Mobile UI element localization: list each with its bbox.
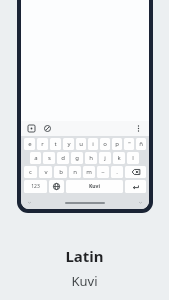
button[interactable]: c [24, 166, 37, 178]
button[interactable]: p [112, 138, 122, 150]
staticText: l [132, 154, 134, 162]
button[interactable]: e [24, 138, 35, 150]
staticText: i [92, 140, 94, 148]
staticText: j [104, 154, 106, 162]
button[interactable]: t [50, 138, 61, 150]
button[interactable]: r [37, 138, 48, 150]
staticText: m [86, 168, 92, 176]
button[interactable]: Enter [125, 180, 146, 193]
staticText: Kuvi [89, 183, 100, 190]
button[interactable]: j [99, 152, 111, 164]
button[interactable]: n [69, 166, 81, 178]
staticText: p [115, 140, 119, 148]
staticText: v [44, 168, 48, 176]
button[interactable]: v [39, 166, 52, 178]
button[interactable]: Change language [49, 180, 64, 193]
staticText: t [54, 140, 57, 148]
button[interactable]: i [88, 138, 98, 150]
button[interactable]: Stickers [26, 123, 37, 134]
button[interactable]: h [85, 152, 97, 164]
staticText: . [116, 168, 118, 176]
button[interactable]: . [111, 166, 123, 178]
button[interactable]: Backspace [125, 166, 146, 178]
staticText: a [34, 154, 38, 162]
button[interactable]: Kuvi [66, 180, 123, 193]
staticText: 123 [31, 183, 40, 190]
staticText: g [75, 154, 79, 162]
button[interactable]: k [113, 152, 125, 164]
button[interactable]: u [76, 138, 86, 150]
button[interactable]: ~ [97, 166, 109, 178]
staticText: r [41, 140, 44, 148]
staticText: d [61, 154, 65, 162]
staticText: " [128, 140, 131, 148]
button[interactable]: m [83, 166, 95, 178]
staticText: k [117, 154, 121, 162]
button[interactable]: s [43, 152, 55, 164]
staticText: ñ [139, 140, 143, 148]
button[interactable]: a [30, 152, 41, 164]
button[interactable]: b [54, 166, 67, 178]
staticText: h [89, 154, 93, 162]
staticText: Kuvi [71, 272, 98, 290]
staticText: e [28, 140, 32, 148]
button[interactable]: l [127, 152, 139, 164]
staticText: s [48, 154, 51, 162]
staticText: y [67, 140, 71, 148]
button[interactable]: " [124, 138, 134, 150]
button[interactable]: More options [133, 123, 144, 134]
staticText: u [79, 140, 83, 148]
staticText: b [59, 168, 63, 176]
staticText: o [103, 140, 107, 148]
staticText: ~ [101, 168, 105, 176]
button[interactable]: d [57, 152, 69, 164]
button[interactable]: ñ [136, 138, 146, 150]
staticText: n [73, 168, 77, 176]
button[interactable]: g [71, 152, 83, 164]
button[interactable]: o [100, 138, 110, 150]
staticText: c [29, 168, 32, 176]
button[interactable]: y [63, 138, 74, 150]
button[interactable]: 123 [24, 180, 47, 193]
staticText: Latin [65, 246, 104, 266]
button[interactable]: GIF [42, 123, 53, 134]
